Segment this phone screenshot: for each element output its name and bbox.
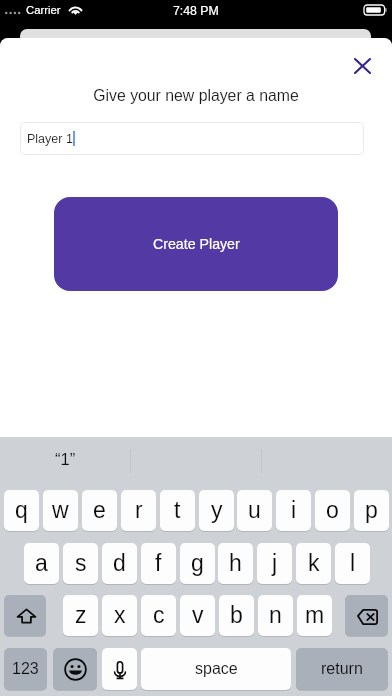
button[interactable]: i [276,490,311,531]
button[interactable]: Close [345,49,379,83]
button[interactable]: g [180,543,215,584]
button[interactable]: Shift [4,595,46,636]
staticText: y [211,497,223,523]
button[interactable]: t [160,490,195,531]
staticText: a [35,550,48,576]
button[interactable]: q [4,490,39,531]
button[interactable]: v [180,595,215,636]
staticText: z [75,602,87,628]
staticText: r [135,497,143,523]
button[interactable]: p [354,490,389,531]
button[interactable]: j [257,543,292,584]
staticText: Create Player [153,236,240,252]
staticText: s [75,550,87,576]
staticText: w [52,497,69,523]
button[interactable]: w [43,490,78,531]
button[interactable]: r [121,490,156,531]
staticText: u [248,497,261,523]
button[interactable]: k [296,543,331,584]
button[interactable]: Player 1 [20,122,364,155]
staticText: m [305,602,325,628]
button[interactable]: return [296,648,388,690]
button[interactable]: y [199,490,234,531]
button[interactable]: f [141,543,176,584]
staticText: space [195,660,238,678]
staticText: g [191,550,204,576]
staticText: h [229,550,242,576]
staticText: x [114,602,126,628]
button[interactable]: d [102,543,137,584]
staticText: 123 [12,660,39,678]
button[interactable]: Create Player [54,197,338,291]
button[interactable]: Backspace [345,595,388,636]
button[interactable]: a [24,543,59,584]
button[interactable]: o [315,490,350,531]
staticText: f [155,550,162,576]
staticText: k [308,550,320,576]
staticText: o [326,497,339,523]
button[interactable]: space [141,648,291,690]
button[interactable]: u [237,490,272,531]
button[interactable]: e [82,490,117,531]
staticText: Player 1 [27,132,73,146]
staticText: t [174,497,181,523]
staticText: “1” [55,450,76,468]
staticText: 7:48 PM [173,4,219,18]
button[interactable]: z [63,595,98,636]
staticText: Carrier [26,4,61,17]
button[interactable]: x [102,595,137,636]
staticText: c [153,602,165,628]
staticText: Give your new player a name [0,87,392,105]
staticText: d [113,550,126,576]
button[interactable]: l [335,543,370,584]
staticText: return [321,660,363,678]
staticText: j [272,550,278,576]
button[interactable]: n [258,595,293,636]
button[interactable]: c [141,595,176,636]
button[interactable]: Emoji [53,648,97,690]
staticText: i [291,497,297,523]
button[interactable]: b [219,595,254,636]
button[interactable]: 123 [4,648,47,690]
staticText: e [93,497,106,523]
button[interactable]: m [297,595,332,636]
staticText: l [350,550,356,576]
staticText: v [192,602,204,628]
staticText: p [365,497,378,523]
button[interactable]: h [218,543,253,584]
button[interactable]: s [63,543,98,584]
staticText: q [15,497,28,523]
staticText: n [269,602,282,628]
button[interactable]: Dictate [102,648,137,690]
staticText: b [230,602,243,628]
